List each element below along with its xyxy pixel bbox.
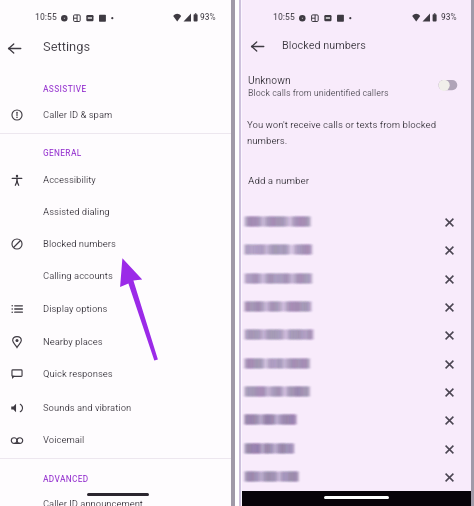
staticText: ADVANCED [43, 474, 89, 484]
staticText: Sounds and vibration [43, 402, 132, 413]
button[interactable]: Remove number [242, 351, 471, 375]
staticText: Caller ID & spam [43, 109, 113, 120]
button[interactable]: Accessibility [0, 166, 231, 194]
button[interactable]: Voicemail [0, 426, 231, 454]
button[interactable]: Assisted dialing [0, 198, 231, 226]
button[interactable]: Remove number [242, 294, 471, 318]
button[interactable]: Remove number [443, 301, 456, 314]
button[interactable]: Nearby places [0, 328, 231, 356]
button[interactable]: Quick responses [0, 360, 231, 388]
staticText: 10:55 [35, 12, 57, 22]
staticText: numbers. [247, 135, 288, 146]
button[interactable]: Remove number [443, 216, 456, 229]
staticText: Settings [43, 39, 91, 54]
button[interactable]: Sounds and vibration [0, 394, 231, 422]
staticText: You won't receive calls or texts from bl… [247, 119, 437, 130]
button[interactable]: Remove number [443, 358, 456, 371]
button[interactable]: Remove number [242, 266, 471, 290]
button[interactable]: Remove number [242, 237, 471, 261]
staticText: GENERAL [43, 148, 82, 158]
staticText: Unknown [248, 74, 291, 86]
staticText: Voicemail [43, 434, 85, 445]
button[interactable]: Remove number [443, 471, 456, 484]
button[interactable]: Remove number [443, 244, 456, 257]
staticText: Caller ID announcement [43, 498, 143, 506]
button[interactable]: Remove number [242, 379, 471, 403]
staticText: 10:55 [273, 12, 295, 22]
button[interactable]: Remove number [443, 273, 456, 286]
button[interactable]: Calling accounts [0, 262, 231, 290]
staticText: Blocked numbers [282, 39, 366, 52]
button[interactable]: Remove number [443, 414, 456, 427]
button[interactable]: Caller ID & spam [0, 101, 231, 129]
button[interactable]: Back [250, 39, 265, 54]
button[interactable]: Blocked numbers [0, 230, 231, 258]
staticText: Nearby places [43, 336, 103, 347]
button[interactable]: Remove number [242, 209, 471, 233]
button[interactable]: Back [7, 41, 22, 56]
staticText: Add a number [248, 175, 310, 186]
staticText: 93% [200, 12, 216, 22]
staticText: Accessibility [43, 174, 96, 185]
staticText: Block calls from unidentified callers [248, 88, 389, 98]
staticText: ASSISTIVE [43, 84, 87, 94]
button[interactable]: Remove number [443, 443, 456, 456]
staticText: Quick responses [43, 368, 113, 379]
button[interactable]: Remove number [242, 322, 471, 346]
button[interactable]: Add a number [242, 172, 471, 192]
staticText: Display options [43, 303, 108, 314]
staticText: Blocked numbers [43, 238, 116, 249]
staticText: 93% [441, 12, 457, 22]
button[interactable]: Remove number [242, 464, 471, 488]
button[interactable]: Remove number [242, 407, 471, 431]
button[interactable]: Unknown [242, 68, 471, 102]
button[interactable]: Remove number [242, 436, 471, 460]
button[interactable]: Remove number [443, 329, 456, 342]
staticText: Calling accounts [43, 270, 113, 281]
button[interactable]: Display options [0, 295, 231, 323]
staticText: Assisted dialing [43, 206, 110, 217]
button[interactable]: Remove number [443, 386, 456, 399]
